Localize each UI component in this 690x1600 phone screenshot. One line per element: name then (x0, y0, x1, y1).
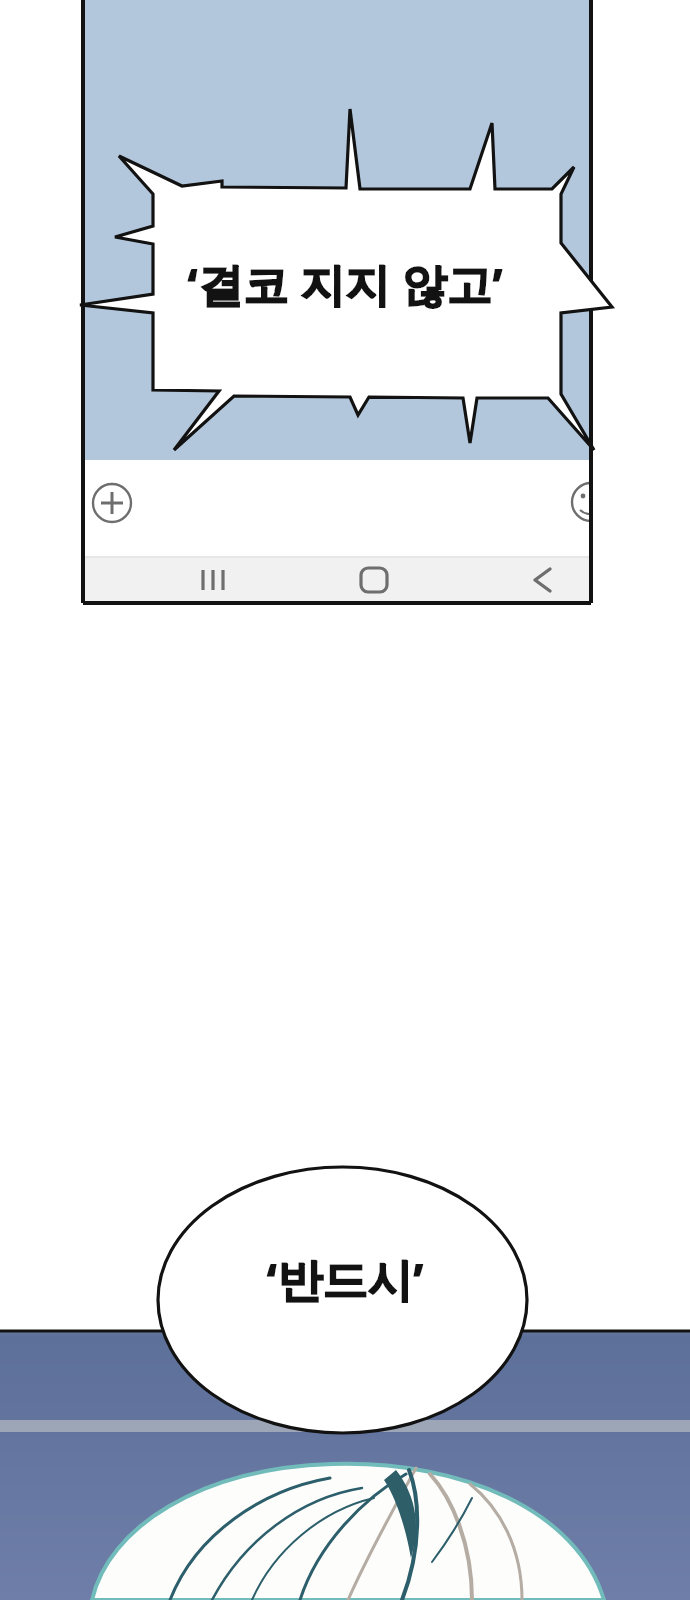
staticText: ‘반드시’ (266, 1248, 424, 1309)
button[interactable]: Emoji (572, 483, 610, 521)
button[interactable]: Add attachment (93, 484, 131, 522)
button[interactable]: Home (319, 556, 429, 603)
staticText: ‘결코 지지 않고’ (187, 253, 503, 314)
button[interactable]: Recent apps (158, 556, 268, 603)
button[interactable]: Back (488, 556, 591, 603)
